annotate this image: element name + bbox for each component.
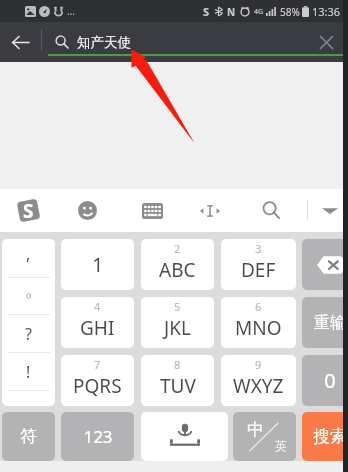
staticText: 1 xyxy=(92,251,104,278)
button[interactable] xyxy=(2,391,55,406)
staticText: 2 xyxy=(174,241,181,256)
staticText: JKL xyxy=(164,315,191,341)
staticText: PQRS xyxy=(73,373,122,399)
button[interactable]: Emoji xyxy=(68,189,106,232)
button[interactable]: Move cursor xyxy=(191,189,229,232)
button[interactable]: Backspace xyxy=(302,239,343,290)
staticText: ? xyxy=(25,323,32,345)
staticText: 英 xyxy=(275,438,287,453)
button[interactable]: 123 xyxy=(61,412,134,461)
staticText: 0 xyxy=(324,367,336,394)
button[interactable]: Keyboard layout xyxy=(133,189,171,232)
staticText: S xyxy=(203,4,210,19)
button[interactable]: Space xyxy=(141,412,228,461)
button[interactable]: ◦ xyxy=(2,278,55,315)
button[interactable]: Back xyxy=(4,22,36,62)
staticText: , xyxy=(26,243,31,265)
button[interactable]: 0 xyxy=(302,355,343,406)
staticText: 13:36 xyxy=(312,4,341,19)
staticText: ◦ xyxy=(24,287,34,306)
staticText: 5 xyxy=(174,299,181,314)
staticText: 搜索 xyxy=(313,426,343,447)
button[interactable]: 6 xyxy=(221,297,296,348)
staticText: ! xyxy=(26,361,31,383)
button[interactable]: 重输 xyxy=(302,297,343,348)
staticText: MNO xyxy=(235,315,282,341)
button[interactable]: 符 xyxy=(2,412,55,461)
staticText: 知产天使 xyxy=(77,34,131,51)
staticText: ... xyxy=(67,4,76,18)
button[interactable]: Search xyxy=(252,189,290,232)
staticText: 123 xyxy=(83,425,113,448)
staticText: 7 xyxy=(94,357,101,372)
button[interactable]: ? xyxy=(2,315,55,353)
button[interactable]: , xyxy=(2,239,55,406)
button[interactable]: 3 xyxy=(221,239,296,290)
button[interactable]: Sogou input xyxy=(9,189,47,232)
button[interactable]: 4 xyxy=(61,297,134,348)
button[interactable]: ! xyxy=(2,353,55,391)
staticText: 9 xyxy=(255,357,262,372)
button[interactable]: 5 xyxy=(141,297,214,348)
button[interactable]: , xyxy=(2,239,55,278)
button[interactable]: 2 xyxy=(141,239,214,290)
staticText: 8 xyxy=(174,357,181,372)
staticText: N xyxy=(227,5,236,19)
staticText: GHI xyxy=(80,315,115,341)
staticText: 中 xyxy=(247,419,264,440)
staticText: WXYZ xyxy=(233,373,284,399)
button[interactable]: 9 xyxy=(221,355,296,406)
staticText: 58% xyxy=(280,5,300,19)
staticText: 3 xyxy=(255,241,262,256)
staticText: ABC xyxy=(159,257,196,283)
staticText: TUV xyxy=(160,373,196,399)
button[interactable]: 8 xyxy=(141,355,214,406)
button[interactable]: Hide keyboard xyxy=(311,189,348,232)
staticText: 4G xyxy=(254,7,264,17)
button[interactable]: 1 xyxy=(61,239,134,290)
staticText: 4 xyxy=(94,299,101,314)
button[interactable]: 搜索 xyxy=(302,412,343,461)
staticText: 重输 xyxy=(314,313,343,333)
staticText: 符 xyxy=(20,426,37,447)
staticText: S xyxy=(23,198,34,221)
staticText: DEF xyxy=(241,257,276,283)
button[interactable]: Clear xyxy=(309,22,343,62)
button[interactable]: 7 xyxy=(61,355,134,406)
button[interactable]: Chinese English switch xyxy=(233,412,296,461)
staticText: 6 xyxy=(255,299,262,314)
